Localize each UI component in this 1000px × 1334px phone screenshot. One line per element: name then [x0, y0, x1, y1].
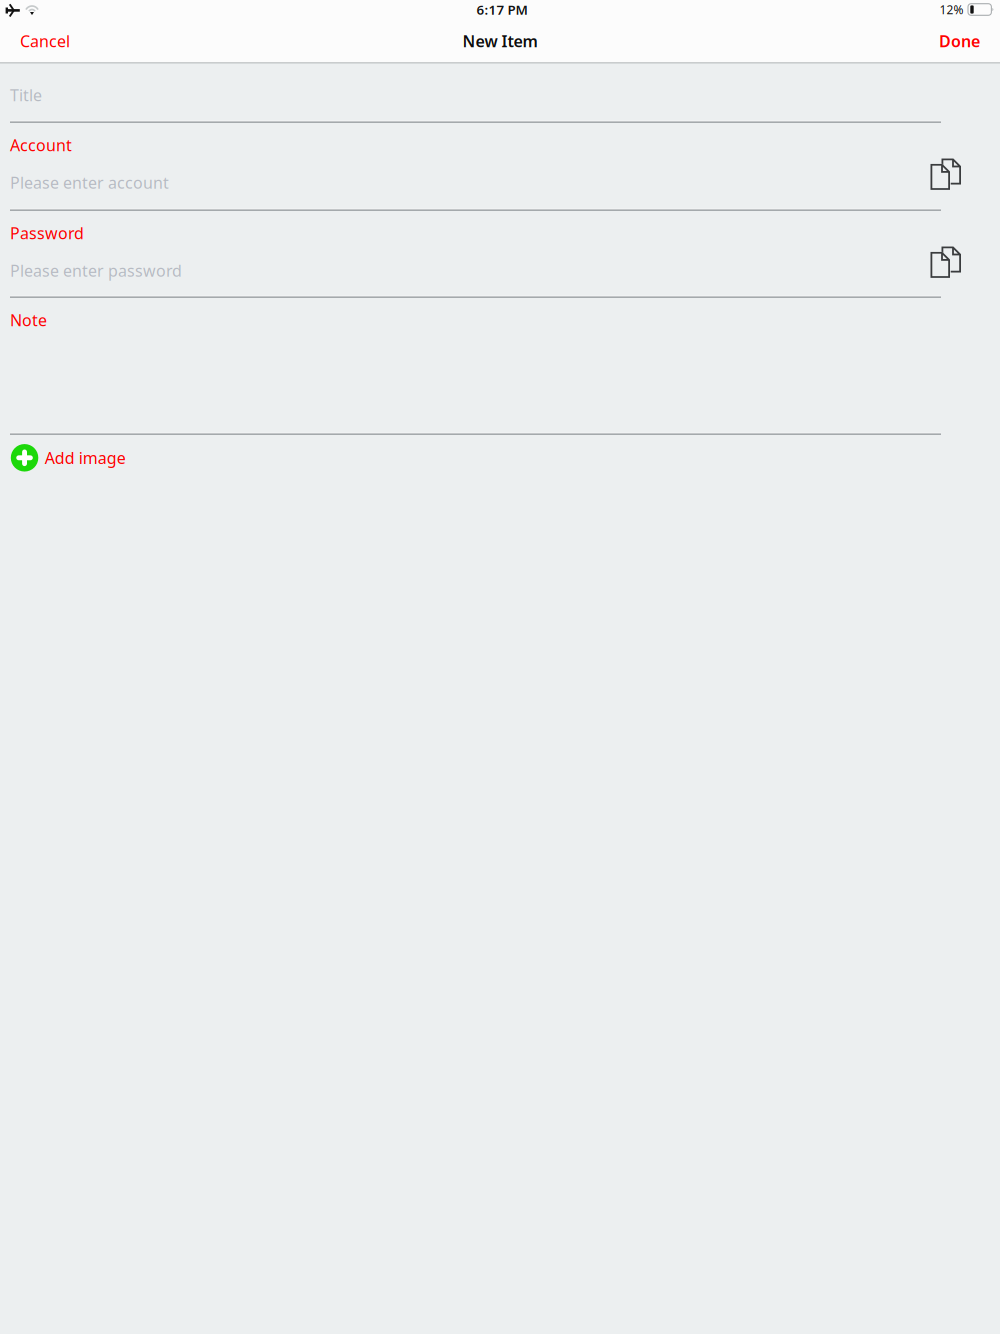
button[interactable]: Done [890, 22, 1000, 60]
button[interactable]: Please enter password [10, 253, 890, 287]
staticText: Title [10, 84, 42, 106]
button[interactable]: Please enter account [10, 165, 890, 199]
staticText: Cancel [20, 30, 70, 52]
button[interactable]: Cancel [0, 22, 110, 60]
staticText: Password [10, 222, 84, 244]
staticText: 6:17 PM [476, 1, 527, 18]
button[interactable]: Add image [0, 438, 400, 478]
staticText: Add image [45, 447, 126, 468]
button[interactable]: Copy password [920, 236, 972, 288]
staticText: Done [939, 30, 980, 52]
button[interactable]: Copy account [920, 148, 972, 200]
staticText: Account [10, 134, 72, 156]
staticText: Please enter password [10, 260, 182, 281]
staticText: Please enter account [10, 172, 169, 193]
staticText: 12% [939, 1, 963, 17]
staticText: New Item [462, 30, 537, 52]
staticText: Note [10, 309, 47, 331]
